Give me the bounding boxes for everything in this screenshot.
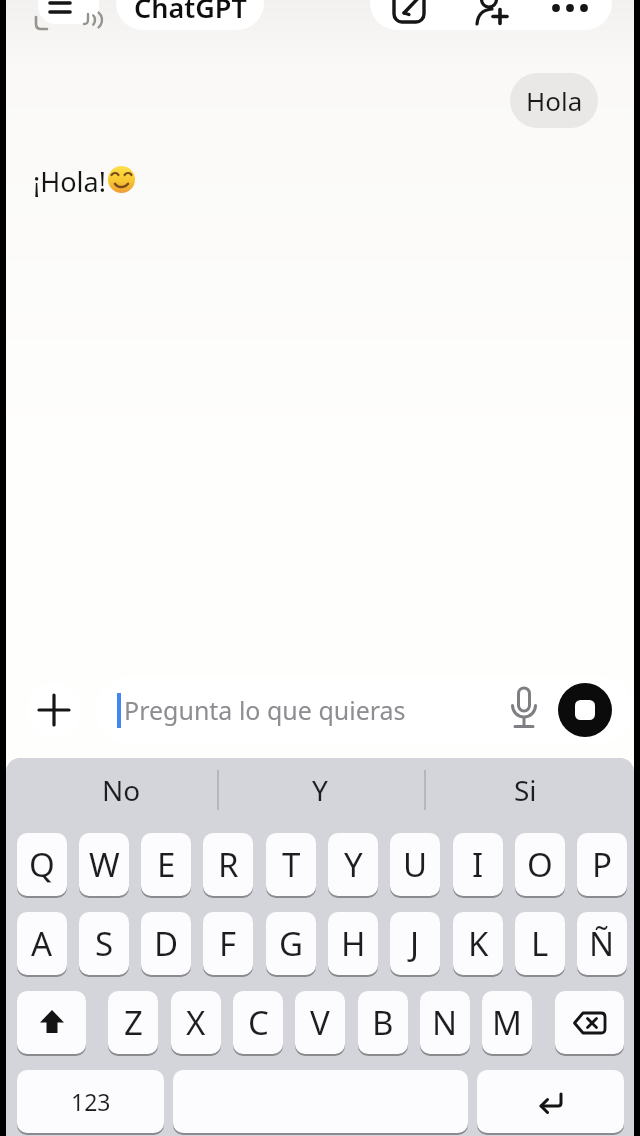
staticText: K — [468, 921, 489, 966]
button[interactable] — [38, 0, 99, 24]
button[interactable] — [510, 687, 538, 733]
staticText: Hola — [526, 83, 583, 118]
button[interactable]: S — [79, 912, 129, 975]
staticText: E — [157, 842, 176, 887]
button[interactable]: F — [203, 912, 253, 975]
staticText: H — [341, 921, 366, 966]
button[interactable]: J — [390, 912, 440, 975]
staticText: Y — [344, 842, 363, 887]
button[interactable]: E — [141, 833, 191, 896]
staticText: Ñ — [589, 921, 615, 966]
staticText: S — [95, 921, 114, 966]
staticText: P — [592, 842, 612, 887]
button[interactable] — [27, 683, 81, 737]
button[interactable]: Q — [17, 833, 67, 896]
button[interactable] — [550, 4, 590, 14]
button[interactable]: Ñ — [577, 912, 627, 975]
button[interactable]: Z — [108, 991, 158, 1054]
staticText: G — [279, 921, 304, 966]
button[interactable]: A — [17, 912, 67, 975]
staticText: F — [219, 921, 237, 966]
staticText: 123 — [71, 1086, 111, 1117]
staticText: R — [218, 842, 239, 887]
staticText: O — [527, 842, 553, 887]
staticText: Q — [29, 842, 55, 887]
button[interactable] — [477, 1070, 624, 1133]
staticText: B — [372, 1000, 394, 1045]
button[interactable]: K — [453, 912, 503, 975]
button[interactable]: No — [25, 765, 217, 815]
button[interactable]: Si — [429, 765, 621, 815]
staticText: J — [410, 921, 420, 966]
staticText: ¡Hola! — [33, 163, 106, 200]
button[interactable]: 123 — [17, 1070, 164, 1133]
button[interactable]: T — [266, 833, 316, 896]
staticText: A — [31, 921, 53, 966]
staticText: T — [282, 842, 301, 887]
button[interactable]: O — [515, 833, 565, 896]
button[interactable] — [555, 991, 624, 1054]
staticText: N — [432, 1000, 458, 1045]
staticText: D — [154, 921, 179, 966]
button[interactable] — [96, 676, 633, 744]
button[interactable]: L — [515, 912, 565, 975]
button[interactable]: Y — [224, 765, 416, 815]
button[interactable]: U — [390, 833, 440, 896]
button[interactable]: G — [266, 912, 316, 975]
button[interactable]: B — [358, 991, 408, 1054]
staticText: Si — [514, 771, 537, 809]
staticText: ChatGPT — [134, 0, 247, 26]
button[interactable] — [173, 1070, 468, 1133]
button[interactable]: V — [295, 991, 345, 1054]
button[interactable]: Hola — [510, 73, 598, 128]
staticText: V — [310, 1000, 330, 1045]
staticText: U — [403, 842, 428, 887]
staticText: C — [248, 1000, 269, 1045]
button[interactable]: I — [453, 833, 503, 896]
button[interactable] — [17, 991, 86, 1054]
staticText: M — [492, 1000, 522, 1045]
button[interactable] — [472, 0, 512, 28]
staticText: Z — [124, 1000, 143, 1045]
button[interactable]: W — [79, 833, 129, 896]
button[interactable]: R — [203, 833, 253, 896]
button[interactable]: H — [328, 912, 378, 975]
button[interactable]: M — [482, 991, 532, 1054]
staticText: No — [102, 771, 141, 809]
button[interactable]: N — [420, 991, 470, 1054]
button[interactable]: Y — [328, 833, 378, 896]
staticText: L — [531, 921, 549, 966]
button[interactable]: P — [577, 833, 627, 896]
button[interactable]: C — [233, 991, 283, 1054]
staticText: W — [89, 842, 120, 887]
staticText: Y — [312, 771, 328, 809]
staticText: X — [186, 1000, 206, 1045]
button[interactable]: X — [171, 991, 221, 1054]
button[interactable]: ChatGPT — [116, 0, 264, 30]
button[interactable] — [392, 0, 426, 24]
staticText: I — [472, 842, 484, 887]
staticText: Pregunta lo que quieras — [124, 693, 406, 727]
button[interactable] — [558, 683, 612, 737]
button[interactable]: D — [141, 912, 191, 975]
